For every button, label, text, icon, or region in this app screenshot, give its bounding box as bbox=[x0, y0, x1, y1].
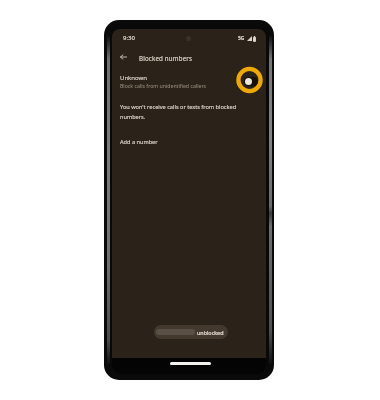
staticText: Block calls from unidentified callers bbox=[120, 82, 207, 89]
button[interactable]: Back bbox=[117, 51, 129, 63]
staticText: Add a number bbox=[120, 138, 158, 146]
staticText: unblocked bbox=[197, 329, 224, 336]
staticText: Blocked numbers bbox=[139, 54, 193, 62]
staticText: 9:30 bbox=[123, 34, 135, 42]
button[interactable]: unblocked bbox=[154, 325, 228, 339]
button[interactable]: Unknown bbox=[112, 67, 266, 91]
button[interactable]: Add a number bbox=[112, 120, 266, 152]
button[interactable]: Block unknown callers bbox=[236, 68, 263, 92]
staticText: Unknown bbox=[120, 74, 147, 82]
staticText: 5G bbox=[238, 35, 245, 42]
staticText: You won't receive calls or texts from bl… bbox=[120, 103, 254, 120]
